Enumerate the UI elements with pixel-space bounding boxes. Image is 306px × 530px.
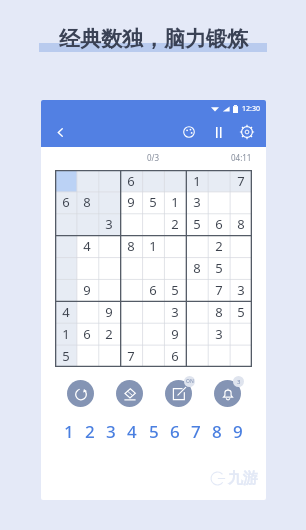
button[interactable] xyxy=(230,345,252,367)
button[interactable] xyxy=(98,170,120,191)
button[interactable] xyxy=(142,257,164,279)
button[interactable] xyxy=(186,279,208,301)
button[interactable]: Erase xyxy=(112,376,146,410)
button[interactable]: 1 xyxy=(55,323,76,345)
button[interactable]: Notes xyxy=(161,376,195,410)
button[interactable]: 6 xyxy=(165,419,185,443)
button[interactable] xyxy=(230,257,252,279)
button[interactable] xyxy=(55,213,76,235)
button[interactable]: 3 xyxy=(230,279,252,301)
button[interactable] xyxy=(120,213,142,235)
button[interactable] xyxy=(186,235,208,257)
button[interactable]: 8 xyxy=(207,419,227,443)
button[interactable]: 6 xyxy=(142,279,164,301)
staticText: 2 xyxy=(171,215,179,233)
button[interactable]: 2 xyxy=(80,419,100,443)
button[interactable]: Back xyxy=(50,122,70,142)
button[interactable] xyxy=(98,235,120,257)
button[interactable] xyxy=(55,170,76,191)
button[interactable]: 4 xyxy=(122,419,142,443)
button[interactable]: 8 xyxy=(186,257,208,279)
button[interactable] xyxy=(142,301,164,323)
button[interactable] xyxy=(98,345,120,367)
button[interactable]: 1 xyxy=(186,170,208,191)
button[interactable] xyxy=(186,301,208,323)
button[interactable] xyxy=(76,170,98,191)
button[interactable] xyxy=(98,279,120,301)
button[interactable] xyxy=(76,257,98,279)
button[interactable] xyxy=(98,191,120,213)
button[interactable]: 3 xyxy=(98,213,120,235)
button[interactable] xyxy=(55,257,76,279)
button[interactable]: Theme xyxy=(179,122,199,142)
button[interactable]: 9 xyxy=(164,323,186,345)
button[interactable]: 6 xyxy=(76,323,98,345)
button[interactable]: 6 xyxy=(55,191,76,213)
button[interactable]: 5 xyxy=(55,345,76,367)
button[interactable]: Hint xyxy=(210,376,244,410)
button[interactable] xyxy=(120,323,142,345)
button[interactable] xyxy=(208,345,230,367)
button[interactable] xyxy=(208,191,230,213)
button[interactable] xyxy=(208,170,230,191)
button[interactable] xyxy=(142,323,164,345)
button[interactable]: 7 xyxy=(208,279,230,301)
button[interactable] xyxy=(142,170,164,191)
button[interactable] xyxy=(230,323,252,345)
button[interactable]: Pause xyxy=(208,122,228,142)
button[interactable]: 8 xyxy=(208,301,230,323)
button[interactable] xyxy=(142,213,164,235)
button[interactable] xyxy=(98,257,120,279)
button[interactable]: 6 xyxy=(120,170,142,191)
button[interactable]: 6 xyxy=(208,213,230,235)
button[interactable] xyxy=(120,279,142,301)
button[interactable]: 3 xyxy=(186,191,208,213)
button[interactable]: 2 xyxy=(164,213,186,235)
button[interactable]: 7 xyxy=(230,170,252,191)
button[interactable] xyxy=(164,235,186,257)
button[interactable] xyxy=(186,345,208,367)
button[interactable]: 1 xyxy=(164,191,186,213)
button[interactable]: 2 xyxy=(208,235,230,257)
button[interactable]: 1 xyxy=(59,419,79,443)
button[interactable] xyxy=(186,323,208,345)
button[interactable] xyxy=(142,345,164,367)
button[interactable]: 4 xyxy=(76,235,98,257)
button[interactable] xyxy=(55,235,76,257)
button[interactable]: Undo xyxy=(63,376,97,410)
button[interactable]: 6 xyxy=(164,345,186,367)
button[interactable]: 5 xyxy=(142,191,164,213)
button[interactable] xyxy=(120,257,142,279)
staticText: 经典数独，脑力锻炼 xyxy=(59,26,248,52)
button[interactable]: 3 xyxy=(208,323,230,345)
button[interactable]: 1 xyxy=(142,235,164,257)
button[interactable]: 9 xyxy=(120,191,142,213)
button[interactable]: Settings xyxy=(237,122,257,142)
button[interactable]: 3 xyxy=(101,419,121,443)
button[interactable]: 7 xyxy=(186,419,206,443)
button[interactable] xyxy=(76,213,98,235)
button[interactable] xyxy=(76,345,98,367)
button[interactable]: 5 xyxy=(144,419,164,443)
button[interactable] xyxy=(164,257,186,279)
button[interactable] xyxy=(164,170,186,191)
button[interactable]: 5 xyxy=(186,213,208,235)
button[interactable] xyxy=(230,191,252,213)
button[interactable]: 2 xyxy=(98,323,120,345)
button[interactable]: 8 xyxy=(120,235,142,257)
button[interactable]: 9 xyxy=(228,419,248,443)
button[interactable]: 4 xyxy=(55,301,76,323)
button[interactable]: 3 xyxy=(164,301,186,323)
button[interactable]: 8 xyxy=(230,213,252,235)
button[interactable]: 9 xyxy=(98,301,120,323)
button[interactable] xyxy=(55,279,76,301)
button[interactable]: 9 xyxy=(76,279,98,301)
button[interactable] xyxy=(76,301,98,323)
button[interactable]: 5 xyxy=(230,301,252,323)
button[interactable]: 7 xyxy=(120,345,142,367)
button[interactable] xyxy=(230,235,252,257)
button[interactable]: 5 xyxy=(164,279,186,301)
button[interactable] xyxy=(120,301,142,323)
button[interactable]: 5 xyxy=(208,257,230,279)
button[interactable]: 8 xyxy=(76,191,98,213)
